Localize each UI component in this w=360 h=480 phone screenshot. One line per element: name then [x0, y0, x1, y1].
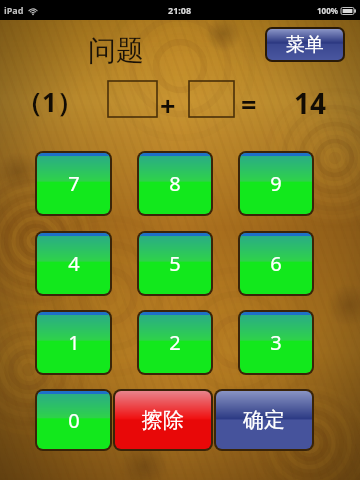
- button[interactable]: 7: [37, 153, 110, 214]
- staticText: 7: [68, 170, 80, 197]
- staticText: =: [241, 86, 257, 123]
- staticText: 6: [270, 250, 282, 277]
- staticText: 问题: [88, 33, 144, 68]
- staticText: iPad: [4, 4, 24, 16]
- staticText: 2: [169, 329, 181, 356]
- staticText: 8: [169, 170, 181, 197]
- staticText: 0: [68, 407, 80, 434]
- staticText: 菜单: [286, 33, 324, 57]
- staticText: 100%: [317, 5, 338, 16]
- staticText: +: [160, 87, 176, 124]
- button[interactable]: 6: [240, 233, 312, 294]
- button[interactable]: 擦除: [115, 391, 211, 449]
- staticText: 5: [169, 250, 181, 277]
- staticText: 4: [68, 250, 80, 277]
- button[interactable]: 3: [240, 312, 312, 373]
- button[interactable]: Second blank: [189, 81, 234, 117]
- staticText: 9: [270, 170, 282, 197]
- staticText: 3: [270, 329, 282, 356]
- button[interactable]: 5: [139, 233, 211, 294]
- staticText: 擦除: [142, 407, 184, 433]
- staticText: 确定: [243, 407, 285, 433]
- button[interactable]: 确定: [216, 391, 312, 449]
- button[interactable]: 8: [139, 153, 211, 214]
- button[interactable]: 2: [139, 312, 211, 373]
- button[interactable]: 菜单: [267, 29, 343, 60]
- staticText: （1）: [16, 84, 83, 120]
- button[interactable]: 4: [37, 233, 110, 294]
- staticText: 1: [68, 329, 80, 356]
- button[interactable]: 1: [37, 312, 110, 373]
- button[interactable]: First blank: [108, 81, 157, 117]
- staticText: 21:08: [168, 4, 192, 16]
- button[interactable]: 0: [37, 391, 110, 449]
- staticText: 14: [294, 84, 327, 122]
- button[interactable]: 9: [240, 153, 312, 214]
